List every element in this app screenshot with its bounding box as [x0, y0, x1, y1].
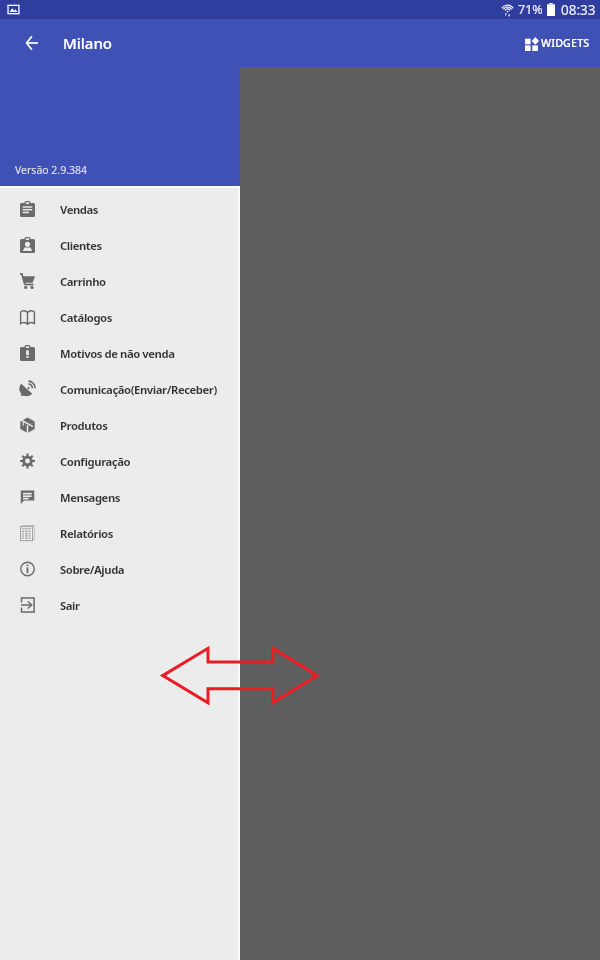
staticText: Relatórios — [60, 526, 113, 541]
button[interactable]: Vendas — [0, 191, 240, 227]
staticText: Motivos de não venda — [60, 346, 175, 361]
staticText: Carrinho — [60, 274, 106, 289]
staticText: Comunicação(Enviar/Receber) — [60, 382, 217, 397]
staticText: Versão 2.9.384 — [15, 163, 88, 177]
button[interactable]: Comunicação(Enviar/Receber) — [0, 371, 240, 407]
staticText: Configuração — [60, 454, 131, 469]
button[interactable]: Configuração — [0, 443, 240, 479]
button[interactable]: Mensagens — [0, 479, 240, 515]
staticText: 08:33 — [561, 1, 596, 19]
button[interactable]: WIDGETS — [513, 28, 600, 59]
button[interactable]: Relatórios — [0, 515, 240, 551]
button[interactable]: Catálogos — [0, 299, 240, 335]
staticText: Sobre/Ajuda — [60, 562, 125, 577]
button[interactable]: Motivos de não venda — [0, 335, 240, 371]
button[interactable]: Produtos — [0, 407, 240, 443]
button[interactable]: Sair — [0, 587, 240, 623]
staticText: Vendas — [60, 202, 99, 217]
staticText: WIDGETS — [541, 36, 590, 51]
staticText: Milano — [63, 33, 113, 53]
staticText: Mensagens — [60, 490, 121, 505]
button[interactable]: Back — [0, 19, 63, 67]
staticText: Clientes — [60, 238, 102, 253]
button[interactable]: Carrinho — [0, 263, 240, 299]
staticText: Sair — [60, 598, 80, 613]
button[interactable]: Sobre/Ajuda — [0, 551, 240, 587]
button[interactable]: Clientes — [0, 227, 240, 263]
staticText: Produtos — [60, 418, 108, 433]
staticText: Catálogos — [60, 310, 112, 325]
staticText: 71% — [518, 1, 543, 18]
